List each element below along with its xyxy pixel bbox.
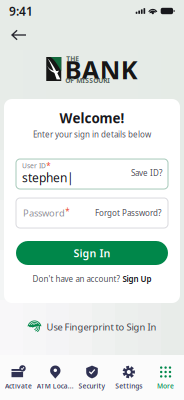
staticText: Security bbox=[78, 382, 105, 390]
staticText: Settings bbox=[115, 382, 142, 390]
staticText: More bbox=[157, 382, 174, 390]
staticText: Enter your sign in details below bbox=[33, 129, 151, 140]
staticText: Use Fingerprint to Sign In bbox=[46, 321, 156, 333]
button[interactable]: Sign In bbox=[16, 241, 168, 265]
button[interactable]: Security bbox=[74, 361, 110, 393]
button[interactable]: Forgot Password? bbox=[95, 208, 161, 218]
staticText: * bbox=[46, 161, 50, 171]
staticText: THE bbox=[66, 54, 79, 63]
staticText: Sign In bbox=[73, 246, 110, 260]
button[interactable]: More bbox=[147, 361, 184, 393]
button[interactable]: ATM Loca... bbox=[37, 361, 74, 393]
staticText: Password bbox=[23, 207, 65, 219]
staticText: 9:41 bbox=[9, 3, 33, 19]
staticText: Sign Up bbox=[122, 274, 151, 284]
staticText: Save ID? bbox=[131, 168, 162, 178]
staticText: OF MISSOURI bbox=[65, 76, 110, 85]
button[interactable]: Back bbox=[6, 25, 32, 45]
staticText: Activate bbox=[5, 382, 32, 390]
staticText: Forgot Password? bbox=[95, 208, 161, 218]
staticText: BANK bbox=[65, 53, 138, 86]
button[interactable]: Activate bbox=[0, 361, 37, 393]
button[interactable]: Save ID? bbox=[131, 168, 162, 178]
staticText: User ID bbox=[22, 161, 46, 170]
button[interactable]: Settings bbox=[110, 361, 147, 393]
button[interactable]: Sign Up bbox=[122, 274, 151, 284]
staticText: Welcome! bbox=[59, 109, 124, 127]
staticText: * bbox=[65, 206, 69, 217]
button[interactable]: Use Fingerprint to Sign In bbox=[27, 317, 156, 337]
staticText: Don't have an account? bbox=[32, 274, 119, 284]
staticText: stephen| bbox=[22, 169, 74, 185]
staticText: ATM Loca... bbox=[37, 382, 74, 390]
